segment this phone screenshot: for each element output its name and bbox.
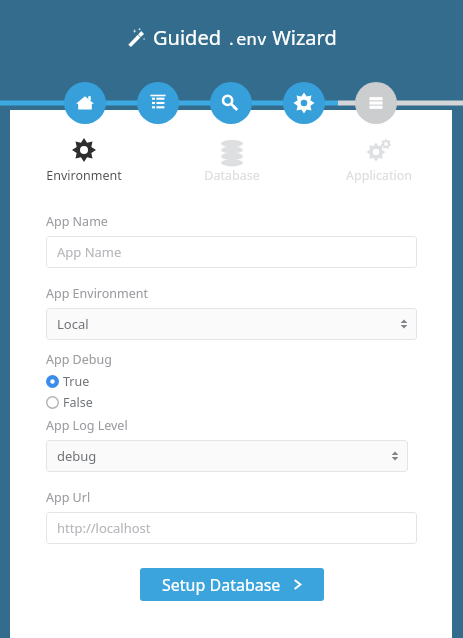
staticText: App Url [46, 489, 91, 506]
staticText: App Name [46, 213, 108, 230]
staticText: Database [204, 167, 260, 184]
staticText: App Log Level [46, 417, 128, 434]
staticText: App Name [57, 243, 122, 261]
button[interactable]: False [46, 392, 93, 413]
staticText: True [63, 373, 90, 390]
button[interactable]: Application [305, 134, 452, 186]
staticText: App Debug [46, 351, 112, 368]
button[interactable]: True [46, 371, 90, 392]
staticText: Local [57, 315, 89, 333]
staticText: Guided .env Wizard [153, 24, 337, 51]
staticText: False [63, 394, 93, 411]
staticText: http://localhost [57, 519, 151, 537]
staticText: Application [346, 167, 412, 184]
button[interactable]: http://localhost [46, 512, 417, 544]
button[interactable]: App Name [46, 236, 417, 268]
staticText: Environment [46, 167, 122, 184]
button[interactable]: Setup Database [140, 568, 324, 601]
button[interactable]: Database [158, 134, 305, 186]
button[interactable]: Local [46, 308, 417, 340]
staticText: debug [57, 447, 97, 465]
staticText: Setup Database [162, 574, 281, 596]
button[interactable]: debug [46, 440, 408, 472]
button[interactable]: Environment [10, 134, 158, 186]
staticText: App Environment [46, 285, 149, 302]
